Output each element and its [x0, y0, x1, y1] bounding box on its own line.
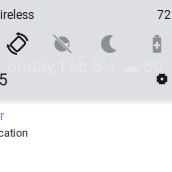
staticText: ar [0, 109, 4, 123]
staticText: 5 [0, 71, 7, 89]
button[interactable]: Settings [156, 73, 167, 84]
button[interactable]: Calendar [0, 110, 4, 122]
staticText: cation [0, 127, 28, 139]
button[interactable]: Battery saver [153, 35, 161, 53]
button[interactable]: Sound off [51, 33, 72, 54]
button[interactable]: Do Not Disturb [101, 35, 119, 53]
staticText: onday, Feb 5 | ☁ 50 [7, 56, 163, 76]
staticText: ireless [0, 8, 34, 22]
staticText: 72° [157, 8, 172, 22]
button[interactable]: Auto rotate [7, 33, 29, 55]
